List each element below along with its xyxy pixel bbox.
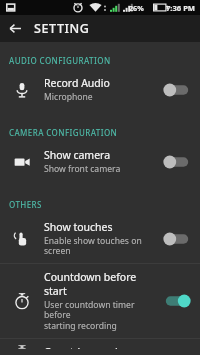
staticText: AUDIO CONFIGURATION xyxy=(9,55,111,66)
staticText: User countdown timer before starting rec… xyxy=(44,299,154,332)
staticText: OTHERS xyxy=(9,199,42,210)
staticText: Countdown before start xyxy=(44,270,154,298)
staticText: Show camera xyxy=(44,148,111,162)
staticText: Enable show touches on screen xyxy=(44,235,154,257)
button[interactable]: Show touches xyxy=(0,214,200,263)
button[interactable]: Toggle off xyxy=(163,231,191,247)
button[interactable]: Toggle on xyxy=(163,293,191,309)
button[interactable]: Countdown before start xyxy=(0,264,200,338)
button[interactable]: Toggle off xyxy=(163,154,191,170)
button[interactable]: Record Audio xyxy=(0,70,200,109)
button[interactable]: Show camera xyxy=(0,142,200,181)
button[interactable]: Back xyxy=(0,15,30,42)
staticText: 7:36 PM xyxy=(166,3,196,13)
staticText: SETTING xyxy=(34,20,90,37)
staticText: CAMERA CONFIGURATION xyxy=(9,127,118,138)
staticText: Show touches xyxy=(44,220,113,234)
button[interactable]: Toggle off xyxy=(163,82,191,98)
staticText: Countdown value xyxy=(44,345,131,349)
button[interactable]: Countdown value xyxy=(0,339,200,355)
staticText: Record Audio xyxy=(44,76,110,90)
staticText: 26% xyxy=(129,3,144,13)
staticText: Microphone xyxy=(44,91,93,103)
staticText: Show front camera xyxy=(44,163,121,175)
